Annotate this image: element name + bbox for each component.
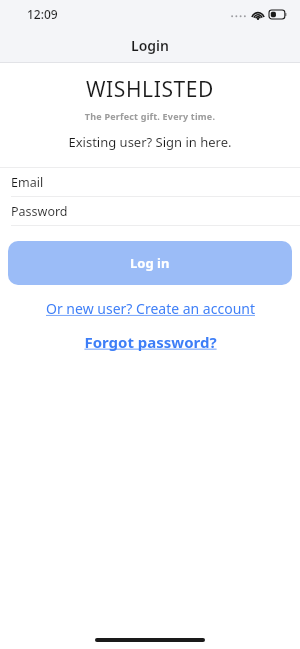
staticText: Log in bbox=[130, 254, 170, 272]
staticText: WISHLISTED bbox=[0, 75, 300, 104]
button[interactable]: Password bbox=[0, 197, 300, 225]
button[interactable]: Or new user? Create an account bbox=[0, 299, 300, 318]
button[interactable]: Log in bbox=[8, 241, 292, 285]
staticText: 12:09 bbox=[27, 6, 58, 22]
staticText: Password bbox=[11, 203, 68, 220]
button[interactable]: Email bbox=[0, 168, 300, 196]
staticText: Login bbox=[131, 36, 169, 55]
staticText: The Perfect gift. Every time. bbox=[0, 110, 300, 122]
staticText: Forgot password? bbox=[84, 332, 217, 352]
staticText: Existing user? Sign in here. bbox=[0, 133, 300, 151]
button[interactable]: Forgot password? bbox=[0, 332, 300, 352]
staticText: Or new user? Create an account bbox=[46, 299, 255, 318]
staticText: Email bbox=[11, 174, 44, 191]
